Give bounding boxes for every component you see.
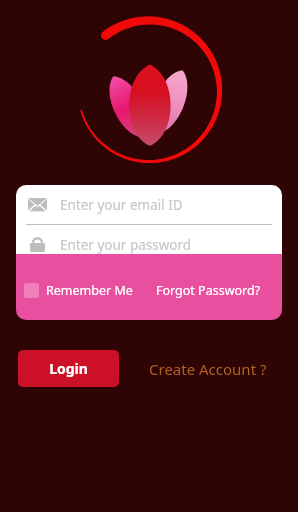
button[interactable]: Forgot Password? [152, 278, 265, 303]
button[interactable]: Enter your email ID [16, 185, 282, 224]
button[interactable]: Remember Me [16, 278, 137, 303]
button[interactable]: Login [18, 350, 119, 387]
staticText: Forgot Password? [156, 282, 261, 299]
staticText: Enter your password [60, 236, 192, 254]
staticText: Login [49, 359, 88, 378]
staticText: Create Account ? [149, 359, 267, 379]
button[interactable]: Create Account ? [145, 353, 271, 385]
staticText: Remember Me [46, 282, 133, 299]
staticText: Enter your email ID [60, 196, 183, 214]
button[interactable]: Enter your password [16, 225, 282, 264]
